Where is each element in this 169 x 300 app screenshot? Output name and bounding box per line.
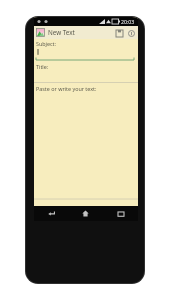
- button[interactable]: [34, 70, 138, 84]
- button[interactable]: Save: [114, 28, 124, 38]
- button[interactable]: Back: [34, 206, 68, 221]
- button[interactable]: Home: [68, 206, 103, 221]
- button[interactable]: More options: [126, 28, 136, 38]
- button[interactable]: [34, 47, 138, 62]
- button[interactable]: Recent apps: [103, 206, 138, 221]
- staticText: Title:: [36, 63, 49, 70]
- staticText: Paste or write your text:: [36, 85, 97, 92]
- staticText: Subject:: [36, 40, 57, 47]
- staticText: New Text: [48, 28, 75, 37]
- staticText: 20:03: [121, 18, 135, 25]
